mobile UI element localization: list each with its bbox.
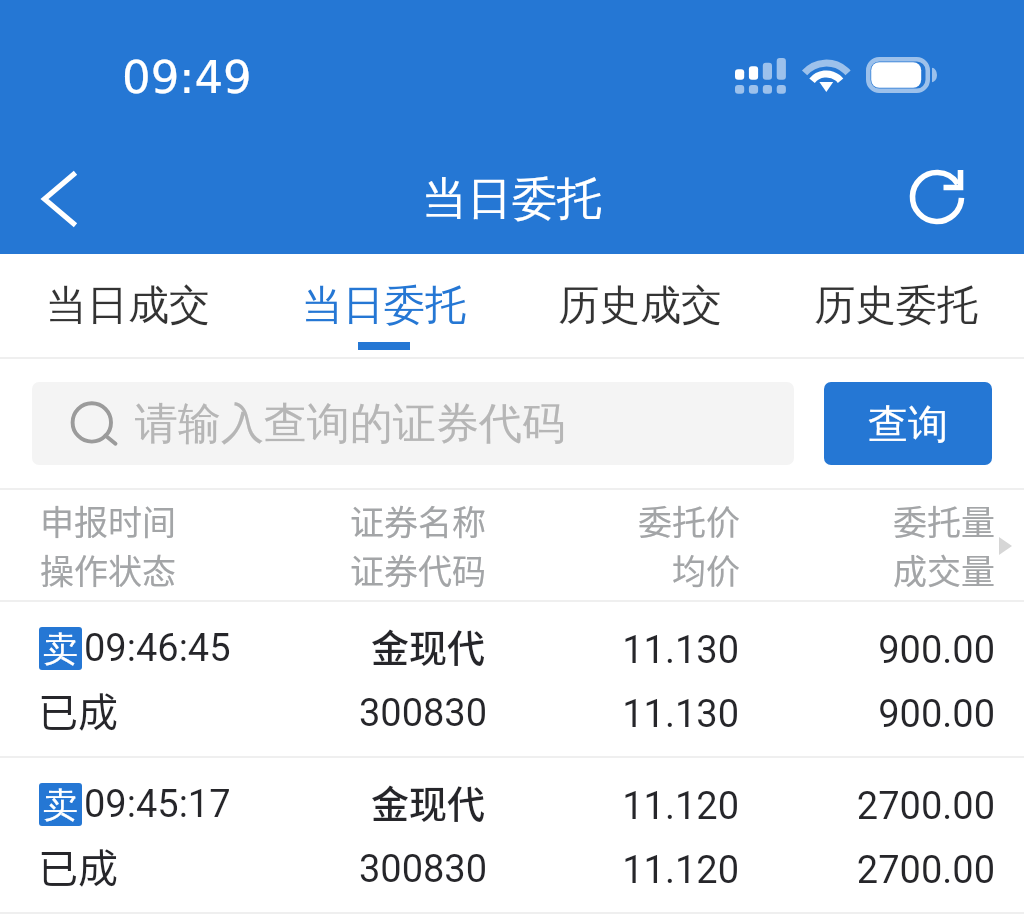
staticText: 11.120 [540, 784, 739, 829]
staticText: 委托量 [746, 496, 995, 545]
staticText: 金现代 [358, 774, 498, 829]
staticText: 历史成交 [558, 280, 722, 332]
button[interactable]: 当日成交 [0, 254, 256, 357]
button[interactable]: Back [4, 144, 114, 254]
button[interactable]: 历史成交 [512, 254, 768, 357]
staticText: 09:45:17 [84, 782, 231, 827]
staticText: 已成 [38, 837, 118, 895]
button[interactable]: 查询 [824, 382, 992, 465]
staticText: 09:49 [122, 51, 252, 103]
staticText: 请输入查询的证券代码 [135, 397, 565, 451]
staticText: 委托价 [542, 496, 740, 545]
staticText: 900.00 [744, 692, 995, 737]
staticText: 11.120 [540, 848, 739, 893]
button[interactable]: 请输入查询的证券代码 [32, 382, 794, 465]
staticText: 成交量 [746, 545, 995, 594]
staticText: 900.00 [744, 628, 995, 673]
staticText: 证券代码 [348, 545, 488, 594]
staticText: 11.130 [540, 628, 739, 673]
staticText: 300830 [353, 847, 493, 892]
button[interactable]: Refresh [882, 142, 992, 252]
staticText: 09:46:45 [84, 626, 231, 671]
staticText: 当日成交 [46, 280, 210, 332]
staticText: 当日委托 [302, 280, 466, 332]
staticText: 卖 [43, 783, 78, 826]
button[interactable]: 卖 [0, 758, 1024, 912]
button[interactable]: 历史委托 [768, 254, 1024, 357]
staticText: 已成 [38, 681, 118, 739]
staticText: 均价 [542, 545, 740, 594]
staticText: 当日委托 [0, 171, 1024, 228]
staticText: 300830 [353, 691, 493, 736]
staticText: 申报时间 [40, 496, 220, 545]
staticText: 11.130 [540, 692, 739, 737]
staticText: 证券名称 [348, 496, 488, 545]
staticText: 2700.00 [744, 848, 995, 893]
button[interactable]: 当日委托 [256, 254, 512, 357]
staticText: 历史委托 [814, 280, 978, 332]
button[interactable]: 卖 [0, 602, 1024, 756]
staticText: 2700.00 [744, 784, 995, 829]
staticText: 金现代 [358, 618, 498, 673]
staticText: 查询 [868, 399, 948, 449]
staticText: 操作状态 [40, 545, 220, 594]
staticText: 卖 [43, 627, 78, 670]
